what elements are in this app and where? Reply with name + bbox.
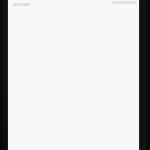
button[interactable]: 23-10-2023: [13, 3, 30, 7]
staticText: 23-10-2023: [13, 3, 30, 7]
